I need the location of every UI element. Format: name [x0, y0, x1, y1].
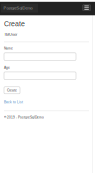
button[interactable]: PostgreSqlDemo: [1, 4, 38, 13]
staticText: Name: [4, 47, 13, 50]
staticText: TblUser: [4, 32, 17, 36]
button[interactable]: Toggle navigation: [83, 5, 91, 11]
staticText: Back to List: [4, 100, 23, 104]
button[interactable]: Back to List: [4, 100, 23, 104]
button[interactable]: Create: [4, 87, 20, 94]
staticText: PostgreSqlDemo: [3, 6, 32, 10]
staticText: Create: [7, 88, 17, 92]
staticText: Age: [4, 66, 10, 69]
staticText: Create: [4, 20, 25, 28]
staticText: © 2019 - PostgreSqlDemo: [4, 116, 44, 119]
